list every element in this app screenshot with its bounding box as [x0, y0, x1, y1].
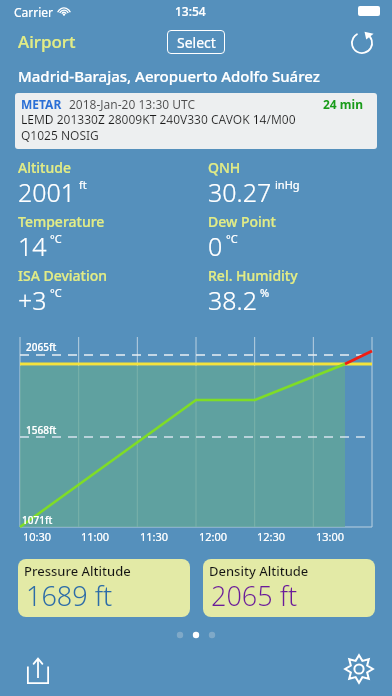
staticText: QNH: [208, 158, 241, 177]
staticText: °C: [50, 231, 62, 246]
staticText: 1071ft: [22, 513, 53, 527]
staticText: Dew Point: [208, 212, 276, 231]
staticText: Q1025 NOSIG: [21, 127, 99, 143]
staticText: Rel. Humidity: [208, 266, 298, 285]
staticText: 12:30: [257, 529, 286, 544]
staticText: °C: [50, 285, 62, 300]
staticText: ft: [79, 177, 87, 192]
staticText: Pressure Altitude: [24, 562, 131, 580]
staticText: 2065 ft: [211, 577, 298, 614]
staticText: °C: [226, 231, 238, 246]
staticText: Select: [177, 33, 216, 52]
staticText: 13:00: [316, 529, 345, 544]
staticText: 11:00: [81, 529, 110, 544]
button[interactable]: Pressure Altitude: [18, 559, 190, 617]
staticText: 0: [208, 229, 223, 263]
staticText: %: [260, 285, 270, 300]
staticText: Density Altitude: [209, 562, 309, 580]
staticText: 11:30: [140, 529, 169, 544]
staticText: Temperature: [18, 212, 105, 231]
button[interactable]: Settings: [338, 648, 380, 690]
staticText: 30.27: [208, 175, 272, 209]
staticText: Airport: [18, 30, 76, 53]
staticText: inHg: [275, 177, 300, 192]
staticText: +3: [18, 283, 47, 317]
staticText: 10:30: [23, 529, 52, 544]
staticText: LEMD 201330Z 28009KT 240V330 CAVOK 14/M0…: [21, 111, 296, 127]
button[interactable]: Airport: [18, 30, 76, 53]
staticText: 2001: [18, 175, 76, 209]
staticText: 14: [18, 229, 47, 263]
staticText: Madrid-Barajas, Aeropuerto Adolfo Suárez: [18, 66, 320, 86]
staticText: 1689 ft: [26, 577, 113, 614]
staticText: Altitude: [18, 158, 71, 177]
staticText: 1568ft: [26, 423, 57, 437]
staticText: ISA Deviation: [18, 266, 108, 285]
staticText: 13:54: [175, 3, 206, 19]
button[interactable]: Refresh: [348, 28, 376, 56]
button[interactable]: Select: [167, 30, 225, 54]
staticText: 2065ft: [26, 340, 57, 354]
staticText: Carrier: [14, 4, 54, 20]
button[interactable]: Density Altitude: [203, 559, 375, 617]
staticText: METAR: [21, 96, 62, 112]
staticText: 2018-Jan-20 13:30 UTC: [69, 96, 196, 112]
staticText: 12:00: [199, 529, 228, 544]
staticText: 38.2: [208, 283, 257, 317]
button[interactable]: Share: [16, 648, 60, 692]
button[interactable]: METAR: [15, 93, 377, 149]
staticText: 24 min: [323, 96, 363, 112]
